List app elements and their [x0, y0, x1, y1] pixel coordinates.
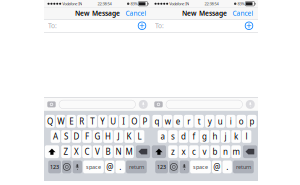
button[interactable]: l [242, 130, 251, 143]
staticText: y [208, 116, 212, 127]
button[interactable]: o [237, 115, 246, 128]
button[interactable]: 123 [155, 160, 168, 173]
button[interactable]: T [87, 115, 97, 128]
button[interactable]: A [51, 130, 60, 143]
button[interactable]: N [114, 145, 123, 158]
button[interactable]: E [66, 115, 76, 128]
button[interactable]: d [179, 130, 188, 143]
staticText: c [192, 146, 196, 157]
button[interactable]: @ [105, 160, 114, 173]
button[interactable]: v [200, 145, 209, 158]
button[interactable]: L [135, 130, 144, 143]
button[interactable]: H [103, 130, 113, 143]
button[interactable]: p [247, 115, 257, 128]
staticText: Vodafone IN [168, 1, 189, 6]
staticText: @ [213, 162, 220, 172]
button[interactable]: s [168, 130, 178, 143]
staticText: B [105, 146, 110, 157]
button[interactable]: Camera [154, 101, 163, 108]
button[interactable]: return [233, 160, 254, 173]
button[interactable]: 123 [48, 160, 61, 173]
staticText: f [192, 131, 195, 142]
button[interactable]: Dictate [180, 160, 189, 173]
button[interactable]: Add contact [137, 21, 147, 31]
button[interactable]: U [109, 115, 118, 128]
staticText: Z [63, 146, 68, 157]
staticText: a [160, 131, 164, 142]
button[interactable]: Z [61, 145, 71, 158]
button[interactable]: . [222, 160, 232, 173]
button[interactable]: j [221, 130, 230, 143]
button[interactable]: Delete [243, 145, 257, 158]
button[interactable]: B [103, 145, 113, 158]
button[interactable]: Next keyboard [169, 160, 178, 173]
button[interactable]: b [210, 145, 220, 158]
button[interactable]: q [152, 115, 162, 128]
button[interactable]: return [126, 160, 147, 173]
button[interactable]: Q [45, 115, 55, 128]
button[interactable]: i [226, 115, 235, 128]
button[interactable]: C [82, 145, 92, 158]
button[interactable]: Next keyboard [62, 160, 71, 173]
button[interactable]: K [124, 130, 134, 143]
button[interactable]: space [190, 160, 211, 173]
button[interactable]: O [130, 115, 139, 128]
button[interactable]: u [216, 115, 225, 128]
button[interactable]: R [77, 115, 86, 128]
button[interactable]: . [115, 160, 125, 173]
button[interactable]: w [163, 115, 172, 128]
button[interactable]: Record audio [138, 100, 148, 109]
button[interactable]: M [124, 145, 134, 158]
button[interactable]: a [158, 130, 167, 143]
staticText: C [84, 146, 89, 157]
staticText: L [138, 131, 142, 142]
button[interactable]: m [231, 145, 241, 158]
staticText: z [171, 146, 175, 157]
button[interactable]: Cancel [123, 7, 148, 20]
button[interactable]: Cancel [230, 7, 255, 20]
button[interactable]: I [119, 115, 128, 128]
staticText: Y [100, 116, 105, 127]
staticText: 22:38:54 [205, 1, 219, 6]
button[interactable]: X [72, 145, 81, 158]
button[interactable]: x [179, 145, 188, 158]
button[interactable]: e [173, 115, 183, 128]
button[interactable]: Y [98, 115, 107, 128]
button[interactable]: Camera [47, 101, 56, 108]
button[interactable]: Shift [152, 145, 166, 158]
button[interactable]: Add contact [244, 21, 254, 31]
button[interactable]: P [140, 115, 150, 128]
staticText: p [249, 116, 254, 127]
staticText: F [85, 131, 89, 142]
button[interactable]: D [72, 130, 81, 143]
button[interactable]: n [221, 145, 230, 158]
button[interactable]: V [93, 145, 102, 158]
button[interactable]: F [82, 130, 92, 143]
staticText: b [212, 146, 217, 157]
button[interactable]: Record audio [245, 100, 255, 109]
staticText: K [127, 131, 132, 142]
button[interactable]: f [189, 130, 199, 143]
button[interactable]: c [189, 145, 199, 158]
staticText: R [79, 116, 84, 127]
button[interactable]: W [56, 115, 65, 128]
button[interactable]: space [83, 160, 104, 173]
staticText: To: [48, 21, 57, 30]
button[interactable]: k [231, 130, 241, 143]
button[interactable]: J [114, 130, 123, 143]
button[interactable]: y [205, 115, 214, 128]
button[interactable]: t [194, 115, 204, 128]
staticText: O [131, 116, 137, 127]
button[interactable]: h [210, 130, 220, 143]
button[interactable]: Dictate [73, 160, 82, 173]
button[interactable]: z [168, 145, 178, 158]
staticText: H [105, 131, 111, 142]
button[interactable]: Shift [45, 145, 59, 158]
button[interactable]: r [184, 115, 193, 128]
button[interactable]: S [61, 130, 71, 143]
button[interactable]: G [93, 130, 102, 143]
button[interactable]: Delete [136, 145, 150, 158]
button[interactable]: @ [212, 160, 221, 173]
staticText: q [155, 116, 160, 127]
button[interactable]: g [200, 130, 209, 143]
